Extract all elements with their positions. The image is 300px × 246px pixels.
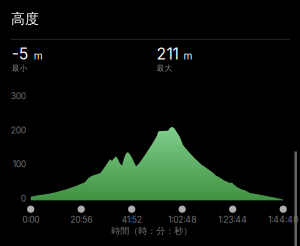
staticText: 41:52 — [122, 214, 142, 225]
staticText: 時間（時：分：秒） — [111, 225, 192, 237]
staticText: 1:44:40 — [268, 214, 298, 225]
staticText: 1:02:48 — [168, 214, 196, 225]
staticText: m — [34, 50, 43, 62]
staticText: -5 — [12, 44, 29, 63]
staticText: 最大 — [156, 63, 172, 73]
staticText: 1:23:44 — [218, 214, 247, 225]
staticText: 100 — [13, 159, 26, 169]
staticText: 0:00 — [22, 214, 39, 225]
staticText: 211 — [156, 44, 178, 63]
staticText: 20:56 — [70, 214, 92, 225]
staticText: 0 — [21, 193, 26, 204]
staticText: 300 — [11, 91, 26, 101]
staticText: 最小 — [12, 63, 28, 73]
staticText: 高度 — [11, 10, 39, 28]
staticText: 200 — [11, 125, 26, 135]
staticText: m — [183, 50, 192, 62]
